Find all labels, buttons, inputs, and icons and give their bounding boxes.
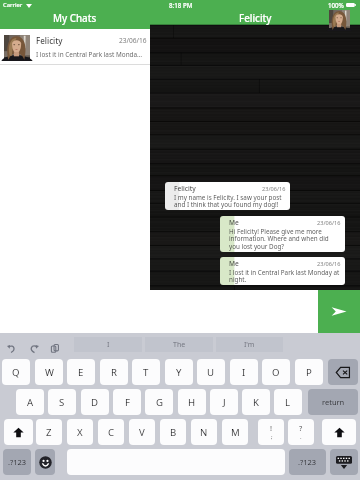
button[interactable]: H (178, 389, 206, 415)
staticText: B (170, 426, 177, 439)
staticText: Me (229, 259, 239, 268)
staticText: I (107, 340, 110, 350)
button[interactable] (35, 449, 55, 475)
button[interactable]: D (81, 389, 109, 415)
staticText: A (27, 396, 34, 409)
button[interactable] (328, 359, 358, 385)
staticText: Q (12, 366, 20, 379)
staticText: 8:18 PM (169, 1, 193, 9)
button[interactable]: G (145, 389, 173, 415)
button[interactable]: Send (318, 290, 360, 333)
button[interactable] (4, 419, 33, 445)
button[interactable]: O (262, 359, 290, 385)
button[interactable]: I (230, 359, 258, 385)
staticText: I lost it in Central Park last Monday at… (229, 268, 341, 284)
staticText: V (139, 426, 145, 439)
button[interactable]: I'm (216, 337, 283, 352)
staticText: X (77, 426, 83, 439)
staticText: My Chats (53, 12, 97, 25)
staticText: Me (229, 218, 239, 227)
staticText: K (253, 396, 259, 409)
button[interactable]: K (242, 389, 270, 415)
button[interactable]: .?123 (289, 449, 326, 475)
button[interactable]: ! (258, 419, 284, 445)
button[interactable]: L (274, 389, 302, 415)
button[interactable]: F (113, 389, 141, 415)
staticText: F (125, 396, 130, 409)
button[interactable] (322, 419, 356, 445)
staticText: . (300, 433, 302, 441)
button[interactable]: C (98, 419, 124, 445)
staticText: Felicity (36, 35, 63, 46)
button[interactable]: P (295, 359, 323, 385)
staticText: L (285, 396, 291, 409)
button[interactable]: I (74, 337, 142, 352)
staticText: Y (176, 366, 182, 379)
button[interactable]: U (197, 359, 225, 385)
staticText: Carrier (3, 1, 23, 9)
button[interactable]: ? (288, 419, 314, 445)
staticText: I lost it in Central Park last Monda… (36, 50, 143, 59)
button[interactable]: Profile (329, 10, 350, 31)
button[interactable]: Undo (7, 344, 16, 353)
staticText: U (207, 366, 215, 379)
staticText: P (306, 366, 312, 379)
button[interactable]: .?123 (3, 449, 31, 475)
button[interactable]: Y (165, 359, 193, 385)
staticText: I'm (244, 340, 255, 350)
staticText: Felicity (239, 12, 272, 25)
staticText: O (272, 366, 280, 379)
button[interactable]: Q (2, 359, 30, 385)
staticText: ; (271, 433, 273, 441)
button[interactable]: N (191, 419, 217, 445)
button[interactable]: S (48, 389, 76, 415)
staticText: 100% (328, 1, 344, 9)
staticText: E (78, 366, 84, 379)
button[interactable]: A (16, 389, 44, 415)
staticText: G (156, 396, 163, 409)
staticText: return (322, 397, 345, 407)
staticText: ! (270, 423, 273, 433)
staticText: Hi Felicity! Please give me more informa… (229, 227, 341, 251)
staticText: 23/06/16 (317, 260, 341, 268)
staticText: I (242, 366, 246, 379)
staticText: D (91, 396, 99, 409)
button[interactable]: Felicity (0, 30, 150, 65)
button[interactable]: J (210, 389, 238, 415)
staticText: 23/06/16 (119, 36, 147, 45)
button[interactable]: Me (220, 216, 345, 252)
button[interactable]: E (67, 359, 95, 385)
button[interactable] (330, 449, 358, 475)
button[interactable]: X (67, 419, 93, 445)
staticText: ? (299, 423, 303, 433)
staticText: Z (46, 426, 52, 439)
button[interactable]: Z (36, 419, 62, 445)
button[interactable]: M (222, 419, 248, 445)
staticText: Felicity (174, 184, 196, 193)
staticText: J (223, 396, 226, 409)
button[interactable]: Felicity (165, 182, 290, 210)
button[interactable]: Redo (29, 344, 39, 353)
button[interactable]: W (35, 359, 63, 385)
button[interactable]: T (132, 359, 160, 385)
button[interactable]: Paste (51, 344, 59, 353)
button[interactable]: V (129, 419, 155, 445)
staticText: 23/06/16 (262, 185, 286, 193)
button[interactable]: R (100, 359, 128, 385)
staticText: S (59, 396, 65, 409)
staticText: The (173, 340, 186, 350)
staticText: T (143, 366, 149, 379)
staticText: N (200, 426, 208, 439)
staticText: 23/06/16 (317, 219, 341, 227)
staticText: R (111, 366, 117, 379)
button[interactable]: return (308, 389, 358, 415)
staticText: W (45, 366, 54, 379)
button[interactable]: The (145, 337, 213, 352)
staticText: .?123 (298, 457, 317, 467)
staticText: H (188, 396, 196, 409)
button[interactable]: Me (220, 257, 345, 285)
staticText: M (231, 426, 240, 439)
button[interactable]: B (160, 419, 186, 445)
